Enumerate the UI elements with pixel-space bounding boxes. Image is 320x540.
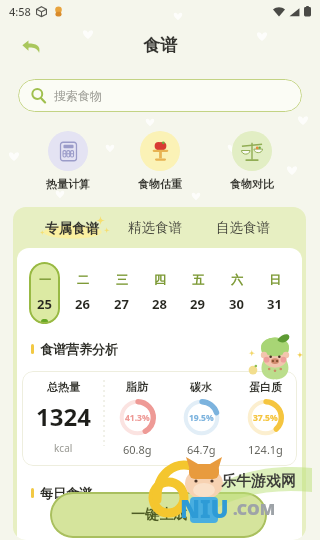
button[interactable]: 自选食谱 [211,215,275,240]
staticText: 总热量 [47,380,80,394]
staticText: 4:58 [9,4,31,19]
staticText: NIU [180,492,229,525]
staticText: 蛋白质 [249,380,282,394]
button[interactable]: 日 [259,262,290,324]
staticText: 124.1g [248,442,283,457]
staticText: 食物估重 [138,177,182,191]
staticText: 41.3% [125,412,150,424]
staticText: 精选食谱 [128,219,182,236]
staticText: 食物对比 [230,177,274,191]
staticText: 25 [37,295,52,313]
staticText: 30 [229,295,244,313]
staticText: 19.5% [189,412,214,424]
staticText: 四 [154,272,166,287]
staticText: 六 [231,272,243,287]
button[interactable]: Back [15,30,47,62]
staticText: 1324 [36,400,91,433]
staticText: 食谱 [143,35,177,56]
staticText: 60.8g [123,442,152,457]
staticText: 热量计算 [46,177,90,191]
staticText: 27 [114,295,129,313]
button[interactable]: 六 [221,262,252,324]
staticText: 乐牛游戏网 [221,472,296,491]
staticText: 一键生成 [131,506,187,524]
button[interactable]: 一键生成 [50,492,267,538]
staticText: 碳水 [190,380,212,394]
staticText: 专属食谱 [45,220,99,237]
staticText: 脂肪 [126,380,148,394]
button[interactable]: 一 [29,262,60,324]
staticText: 29 [190,295,205,313]
staticText: 食谱营养分析 [40,341,118,357]
button[interactable]: 食物估重 [130,131,190,191]
button[interactable]: 搜索食物 [18,79,302,112]
button[interactable]: 二 [67,262,98,324]
staticText: 二 [77,272,89,287]
staticText: 28 [152,295,167,313]
staticText: 三 [116,272,128,287]
staticText: 自选食谱 [216,219,270,236]
staticText: 每日食谱 [40,485,92,501]
button[interactable]: 专属食谱 [40,213,112,243]
staticText: kcal [54,441,73,455]
button[interactable]: 食物对比 [222,131,282,191]
staticText: 37.5% [253,412,278,424]
button[interactable]: 三 [106,262,137,324]
button[interactable]: 热量计算 [38,131,98,191]
button[interactable]: 四 [144,262,175,324]
button[interactable]: 五 [182,262,213,324]
staticText: 26 [75,295,90,313]
staticText: .COM [233,498,276,520]
staticText: 日 [269,272,281,287]
staticText: 一 [39,272,51,287]
staticText: 31 [267,295,282,313]
staticText: 五 [192,272,204,287]
staticText: 搜索食物 [54,88,102,103]
button[interactable]: 精选食谱 [123,215,187,240]
staticText: 64.7g [187,442,216,457]
